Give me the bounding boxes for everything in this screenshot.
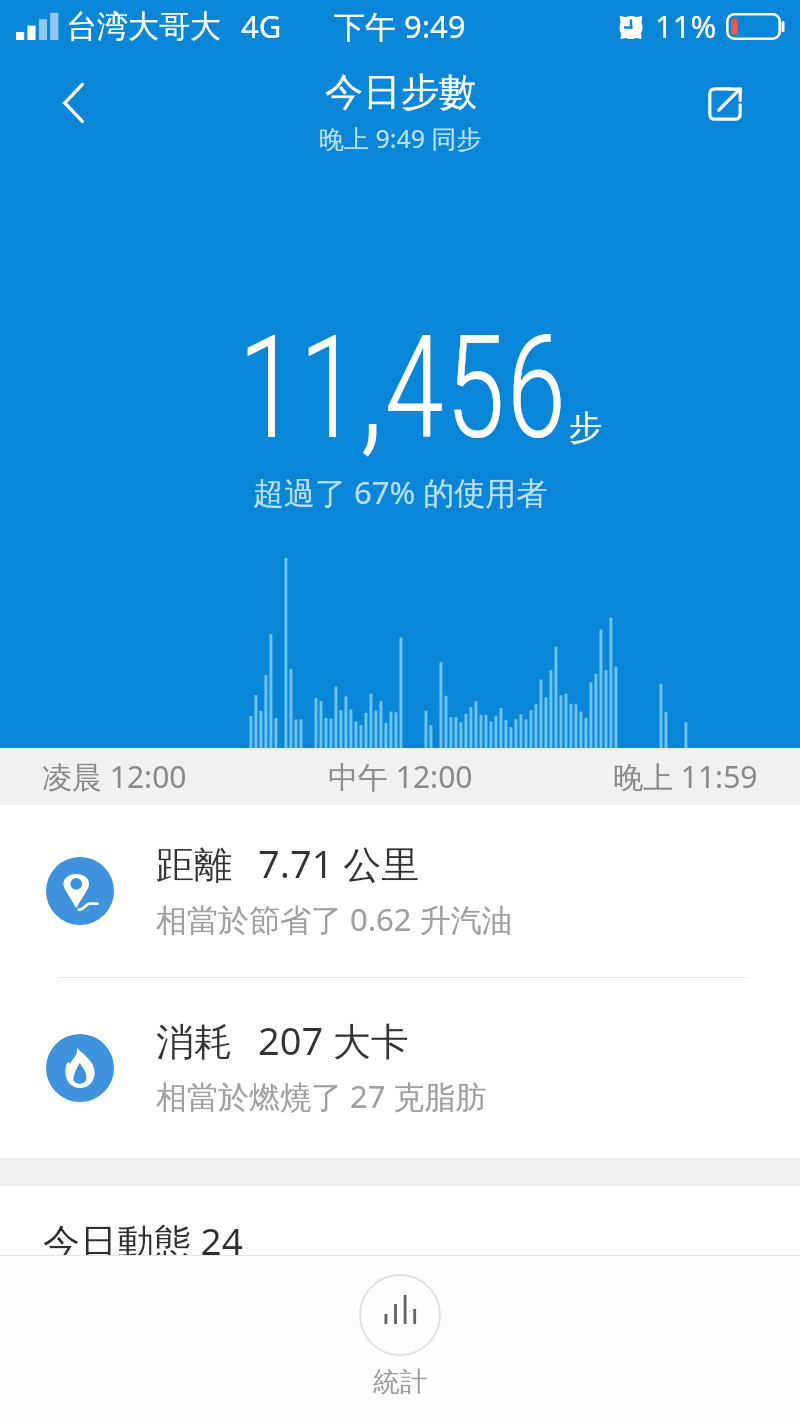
staticText: 11% — [655, 5, 717, 47]
button[interactable]: 消耗 — [0, 978, 800, 1158]
staticText: 今日動態 24 — [43, 1215, 243, 1266]
staticText: 晚上 9:49 同步 — [319, 121, 482, 155]
staticText: 今日步數 — [325, 68, 477, 116]
staticText: 相當於燃燒了 27 克脂肪 — [156, 1075, 487, 1117]
staticText: 凌晨 12:00 — [42, 756, 187, 797]
staticText: 下午 9:49 — [334, 5, 466, 47]
button[interactable]: 距離 — [0, 805, 800, 977]
staticText: 晚上 11:59 — [613, 756, 758, 797]
button[interactable]: 統計 — [359, 1274, 441, 1399]
staticText: 步 — [569, 407, 602, 449]
staticText: 中午 12:00 — [328, 756, 473, 797]
staticText: 相當於節省了 0.62 升汽油 — [156, 898, 513, 940]
staticText: 11,456 — [237, 305, 567, 471]
button[interactable]: Share — [693, 72, 757, 136]
staticText: 207 大卡 — [258, 1014, 410, 1066]
staticText: 超過了 67% 的使用者 — [253, 471, 548, 513]
staticText: 台湾大哥大 — [66, 7, 221, 46]
button[interactable]: Back — [42, 70, 106, 134]
staticText: 消耗 — [156, 1018, 232, 1066]
staticText: 7.71 公里 — [258, 837, 420, 889]
staticText: 4G — [241, 5, 282, 47]
staticText: 統計 — [373, 1365, 427, 1399]
staticText: 距離 — [156, 841, 232, 889]
